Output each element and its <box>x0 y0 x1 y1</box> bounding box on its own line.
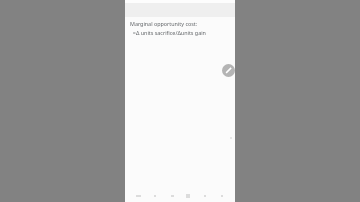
button[interactable]: Keyboard <box>132 191 144 200</box>
button[interactable]: Text format <box>166 191 178 200</box>
staticText: =Δ units sacrifice/Δunits gain <box>130 29 206 36</box>
button[interactable]: Redo <box>216 191 228 200</box>
button[interactable]: Add checkbox <box>149 191 161 200</box>
button[interactable]: Add <box>182 191 194 200</box>
button[interactable]: Undo <box>199 191 211 200</box>
button[interactable]: Marginal opportunity cost: <box>130 20 231 190</box>
button[interactable]: Edit note <box>222 64 235 77</box>
staticText: Marginal opportunity cost: <box>130 20 198 27</box>
